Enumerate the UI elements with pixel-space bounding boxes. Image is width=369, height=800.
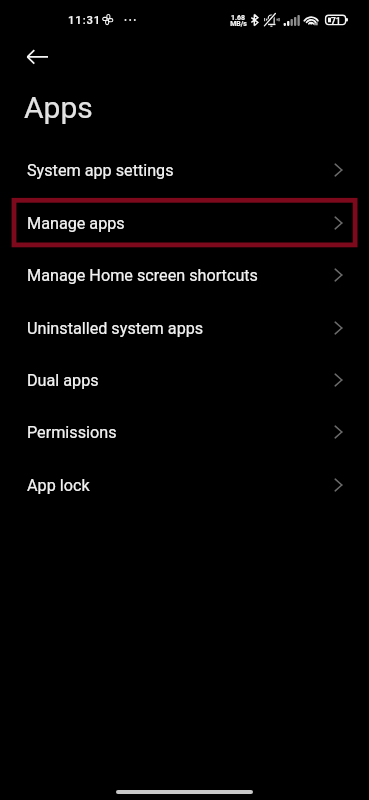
staticText: Manage Home screen shortcuts <box>27 266 258 285</box>
staticText: System app settings <box>27 161 174 180</box>
staticText: Permissions <box>27 423 117 442</box>
button[interactable]: Manage apps <box>0 197 369 249</box>
staticText: Apps <box>24 90 93 125</box>
button[interactable]: Uninstalled system apps <box>0 302 369 354</box>
button[interactable]: Dual apps <box>0 354 369 406</box>
button[interactable]: System app settings <box>0 144 369 196</box>
staticText: 11:31 <box>68 14 102 27</box>
staticText: Uninstalled system apps <box>27 319 204 338</box>
button[interactable]: Permissions <box>0 406 369 458</box>
button[interactable]: App lock <box>0 459 369 511</box>
staticText: Dual apps <box>27 371 99 390</box>
button[interactable]: Back <box>14 38 54 78</box>
staticText: MB/s <box>230 20 247 28</box>
staticText: 1.68 <box>231 14 245 22</box>
button[interactable]: Manage Home screen shortcuts <box>0 249 369 301</box>
staticText: Manage apps <box>27 214 125 233</box>
staticText: App lock <box>27 476 90 495</box>
staticText: 71 <box>331 16 341 26</box>
